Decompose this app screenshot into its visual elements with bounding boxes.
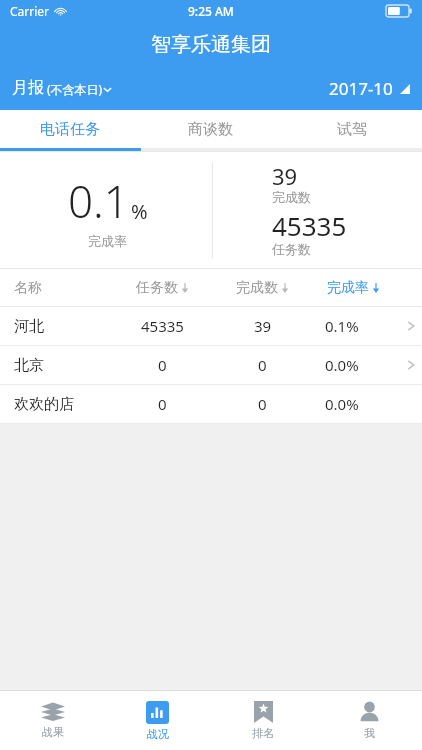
staticText: 任务数 [136,279,178,297]
staticText: 0.1 [68,171,129,231]
staticText: 战果 [42,725,64,739]
staticText: 电话任务 [40,120,100,139]
staticText: 45335 [141,316,184,336]
button[interactable]: 北京 [0,346,422,385]
staticText: 0 [258,394,267,414]
staticText: 完成数 [272,189,311,205]
staticText: 完成数 [236,279,278,297]
staticText: 名称 [14,279,110,297]
button[interactable]: 战果 [0,691,105,750]
staticText: 完成率 [88,233,127,249]
staticText: 我 [364,726,375,740]
staticText: 39 [254,316,272,336]
staticText: 45335 [272,208,347,243]
button[interactable]: 任务数 [110,279,215,297]
staticText: % [131,198,148,225]
button[interactable]: 欢欢的店 [0,385,422,424]
staticText: 智享乐通集团 [151,32,271,57]
staticText: 任务数 [272,241,311,257]
button[interactable]: 完成率 [310,279,396,297]
staticText: 2017-10 [329,77,393,100]
staticText: 北京 [14,356,110,375]
staticText: 河北 [14,317,110,336]
staticText: 0 [258,355,267,375]
button[interactable]: 试驾 [281,110,422,148]
button[interactable]: 河北 [0,307,422,346]
button[interactable]: 战况 [105,691,210,750]
staticText: 排名 [252,726,274,740]
staticText: 0.1% [325,316,359,336]
staticText: (不含本日) [47,81,103,97]
staticText: 完成率 [327,279,369,297]
staticText: 试驾 [337,120,367,139]
button[interactable]: 月报 [0,74,120,102]
staticText: 0.0% [325,394,359,414]
staticText: 战况 [147,727,169,741]
staticText: Carrier [10,3,50,19]
staticText: 商谈数 [188,120,233,139]
button[interactable]: 电话任务 [0,110,140,148]
staticText: 9:25 AM [188,3,234,19]
button[interactable]: 完成数 [215,279,310,297]
staticText: 0 [158,394,167,414]
button[interactable]: 2017-10 [321,73,422,104]
staticText: 0.0% [325,355,359,375]
button[interactable]: 排名 [210,691,316,750]
staticText: 39 [272,161,298,191]
staticText: 月报 [12,78,44,98]
staticText: 欢欢的店 [14,395,110,414]
staticText: 0 [158,355,167,375]
button[interactable]: 商谈数 [140,110,281,148]
button[interactable]: 我 [316,691,422,750]
